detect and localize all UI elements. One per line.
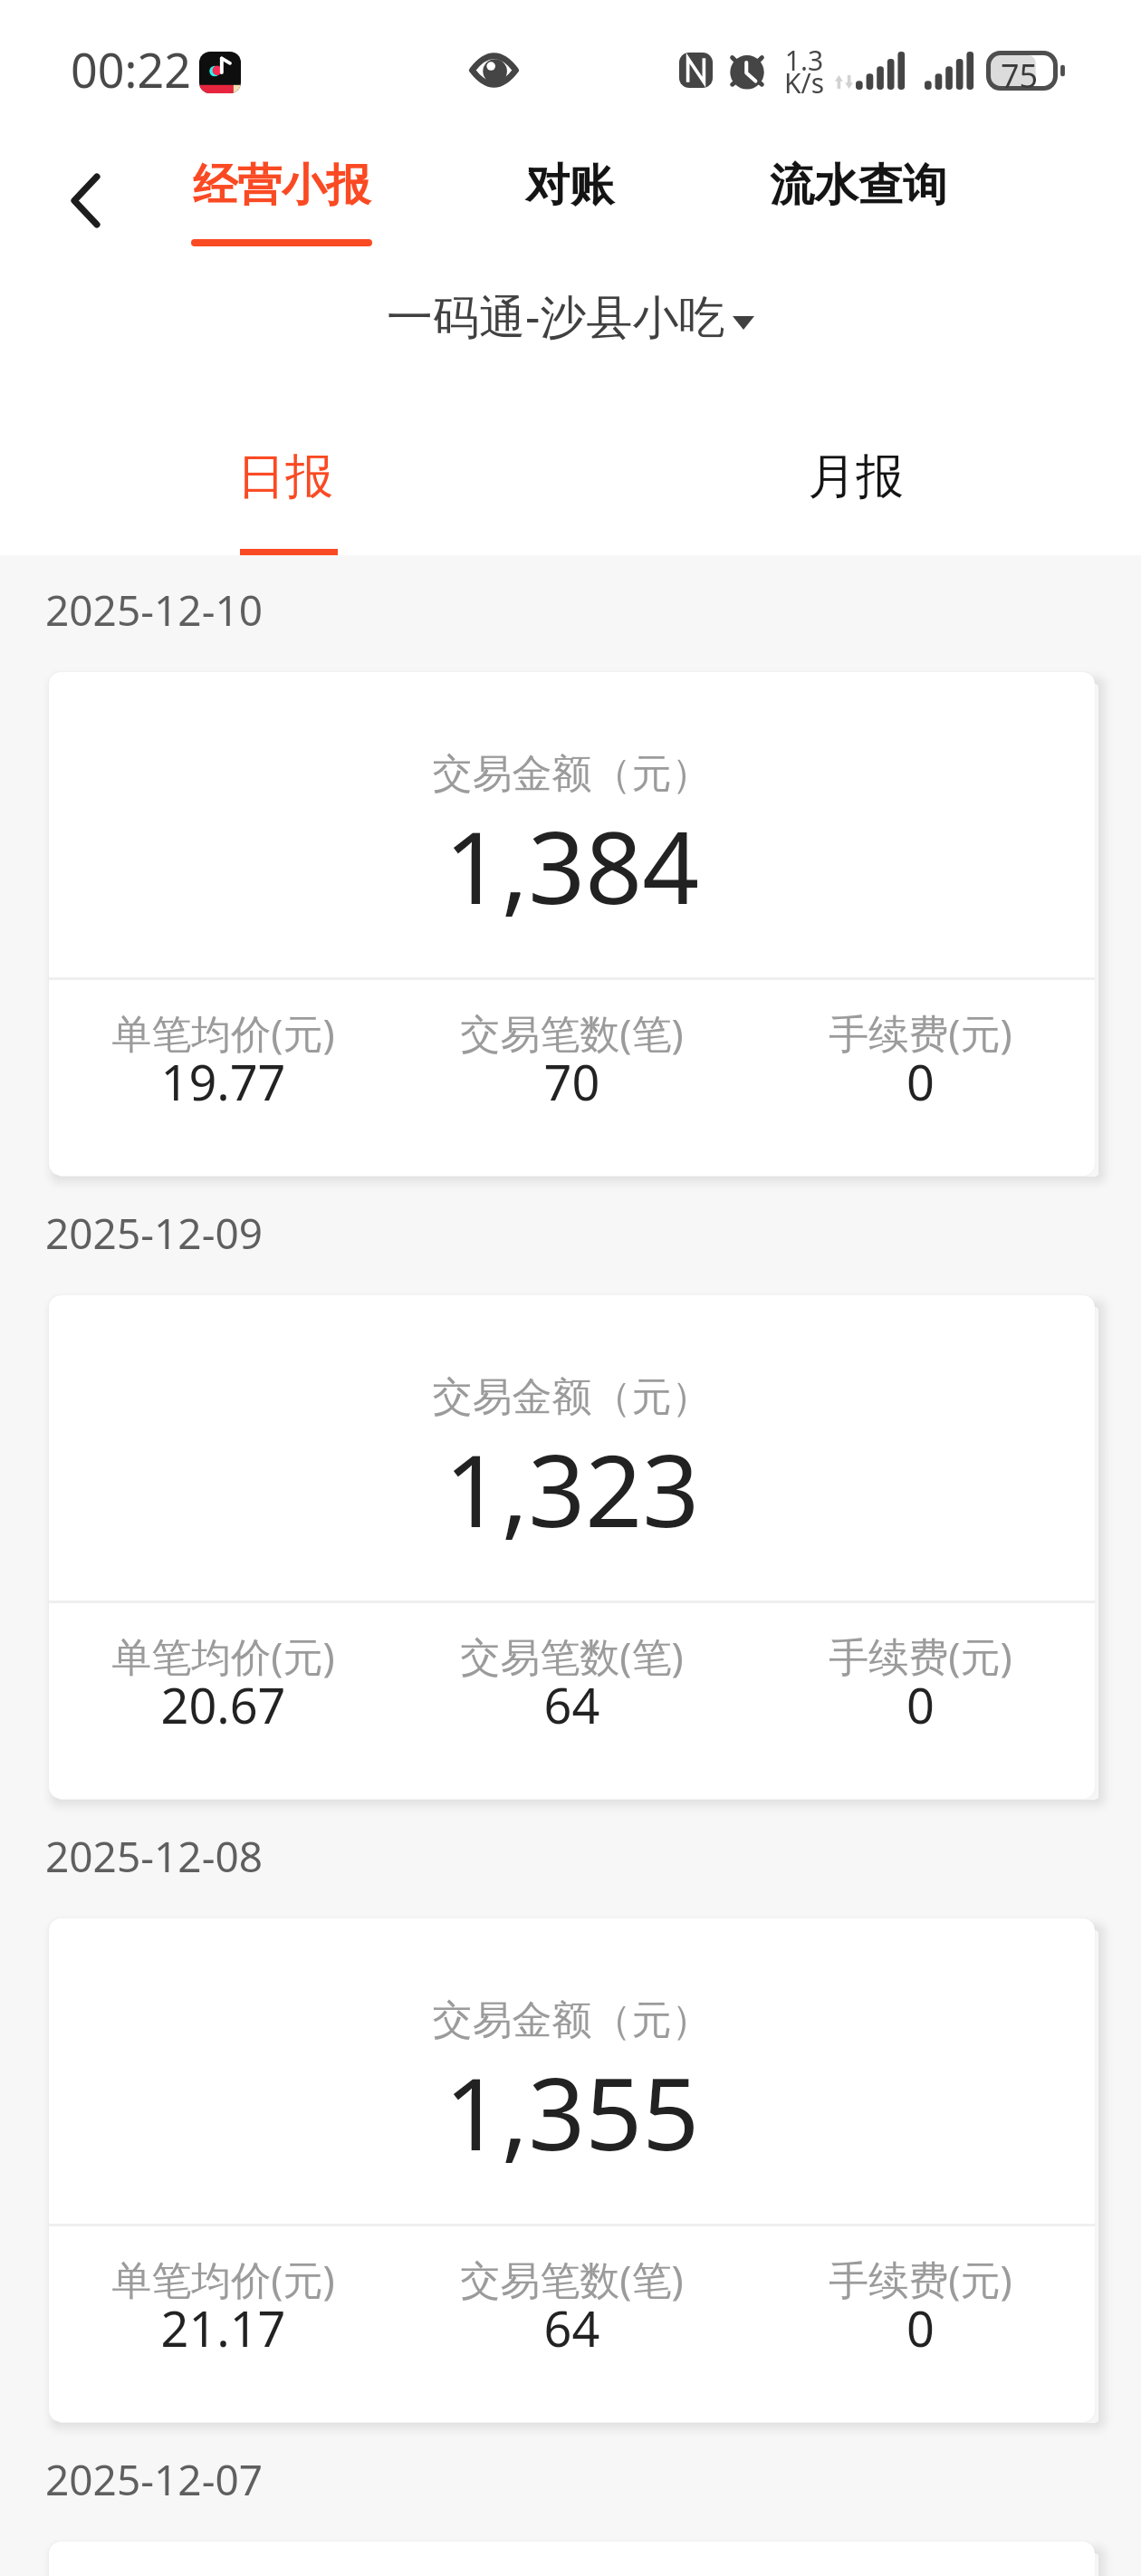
staticText: 21.17	[49, 2294, 398, 2361]
staticText: 20.67	[49, 1671, 398, 1738]
staticText: 1.3	[780, 42, 829, 79]
staticText: 交易金额（元）	[49, 749, 1095, 799]
staticText: 流水查询	[732, 158, 985, 214]
staticText: 单笔均价(元)	[49, 2252, 398, 2306]
button[interactable]: 对账	[443, 137, 696, 264]
staticText: 交易笔数(笔)	[398, 2252, 746, 2306]
staticText: 单笔均价(元)	[49, 1629, 398, 1683]
staticText: 75	[986, 53, 1052, 93]
staticText: 一码通-沙县小吃	[387, 284, 725, 347]
staticText: 19.77	[49, 1048, 398, 1115]
staticText: 70	[398, 1048, 746, 1115]
staticText: 日报	[0, 447, 570, 507]
staticText: 0	[746, 1671, 1095, 1738]
staticText: 交易笔数(笔)	[398, 1629, 746, 1683]
button[interactable]: 交易金额（元）	[49, 1918, 1095, 2422]
staticText: 对账	[443, 158, 696, 214]
staticText: 1,355	[49, 2043, 1095, 2179]
staticText: 0	[746, 1048, 1095, 1115]
button[interactable]: 经营小报	[155, 137, 408, 264]
staticText: 0	[746, 2294, 1095, 2361]
staticText: 2025-12-09	[45, 1205, 264, 1262]
staticText: 交易金额（元）	[49, 1995, 1095, 2045]
staticText: 64	[398, 1671, 746, 1738]
button[interactable]: 交易金额（元）	[49, 672, 1095, 1176]
button[interactable]: 一码通-沙县小吃	[387, 284, 754, 347]
button[interactable]: 月报	[570, 410, 1141, 555]
staticText: 月报	[570, 447, 1141, 507]
staticText: 手续费(元)	[746, 1629, 1095, 1683]
staticText: 手续费(元)	[746, 1005, 1095, 1060]
staticText: 交易笔数(笔)	[398, 1005, 746, 1060]
staticText: 2025-12-07	[45, 2451, 264, 2508]
staticText: K/s	[780, 64, 829, 101]
staticText: 交易金额（元）	[49, 1372, 1095, 1422]
button[interactable]: 交易金额（元）	[49, 1295, 1095, 1799]
button[interactable]: Back	[22, 137, 149, 264]
staticText: 2025-12-10	[45, 582, 264, 639]
button[interactable]: 流水查询	[732, 137, 985, 264]
staticText: 经营小报	[155, 158, 408, 214]
staticText: 2025-12-08	[45, 1828, 264, 1885]
button[interactable]: 日报	[0, 410, 570, 555]
staticText: 单笔均价(元)	[49, 1005, 398, 1060]
staticText: 00:22	[71, 37, 191, 101]
staticText: 1,323	[49, 1420, 1095, 1556]
staticText: 1,384	[49, 797, 1095, 933]
staticText: 64	[398, 2294, 746, 2361]
staticText: 手续费(元)	[746, 2252, 1095, 2306]
